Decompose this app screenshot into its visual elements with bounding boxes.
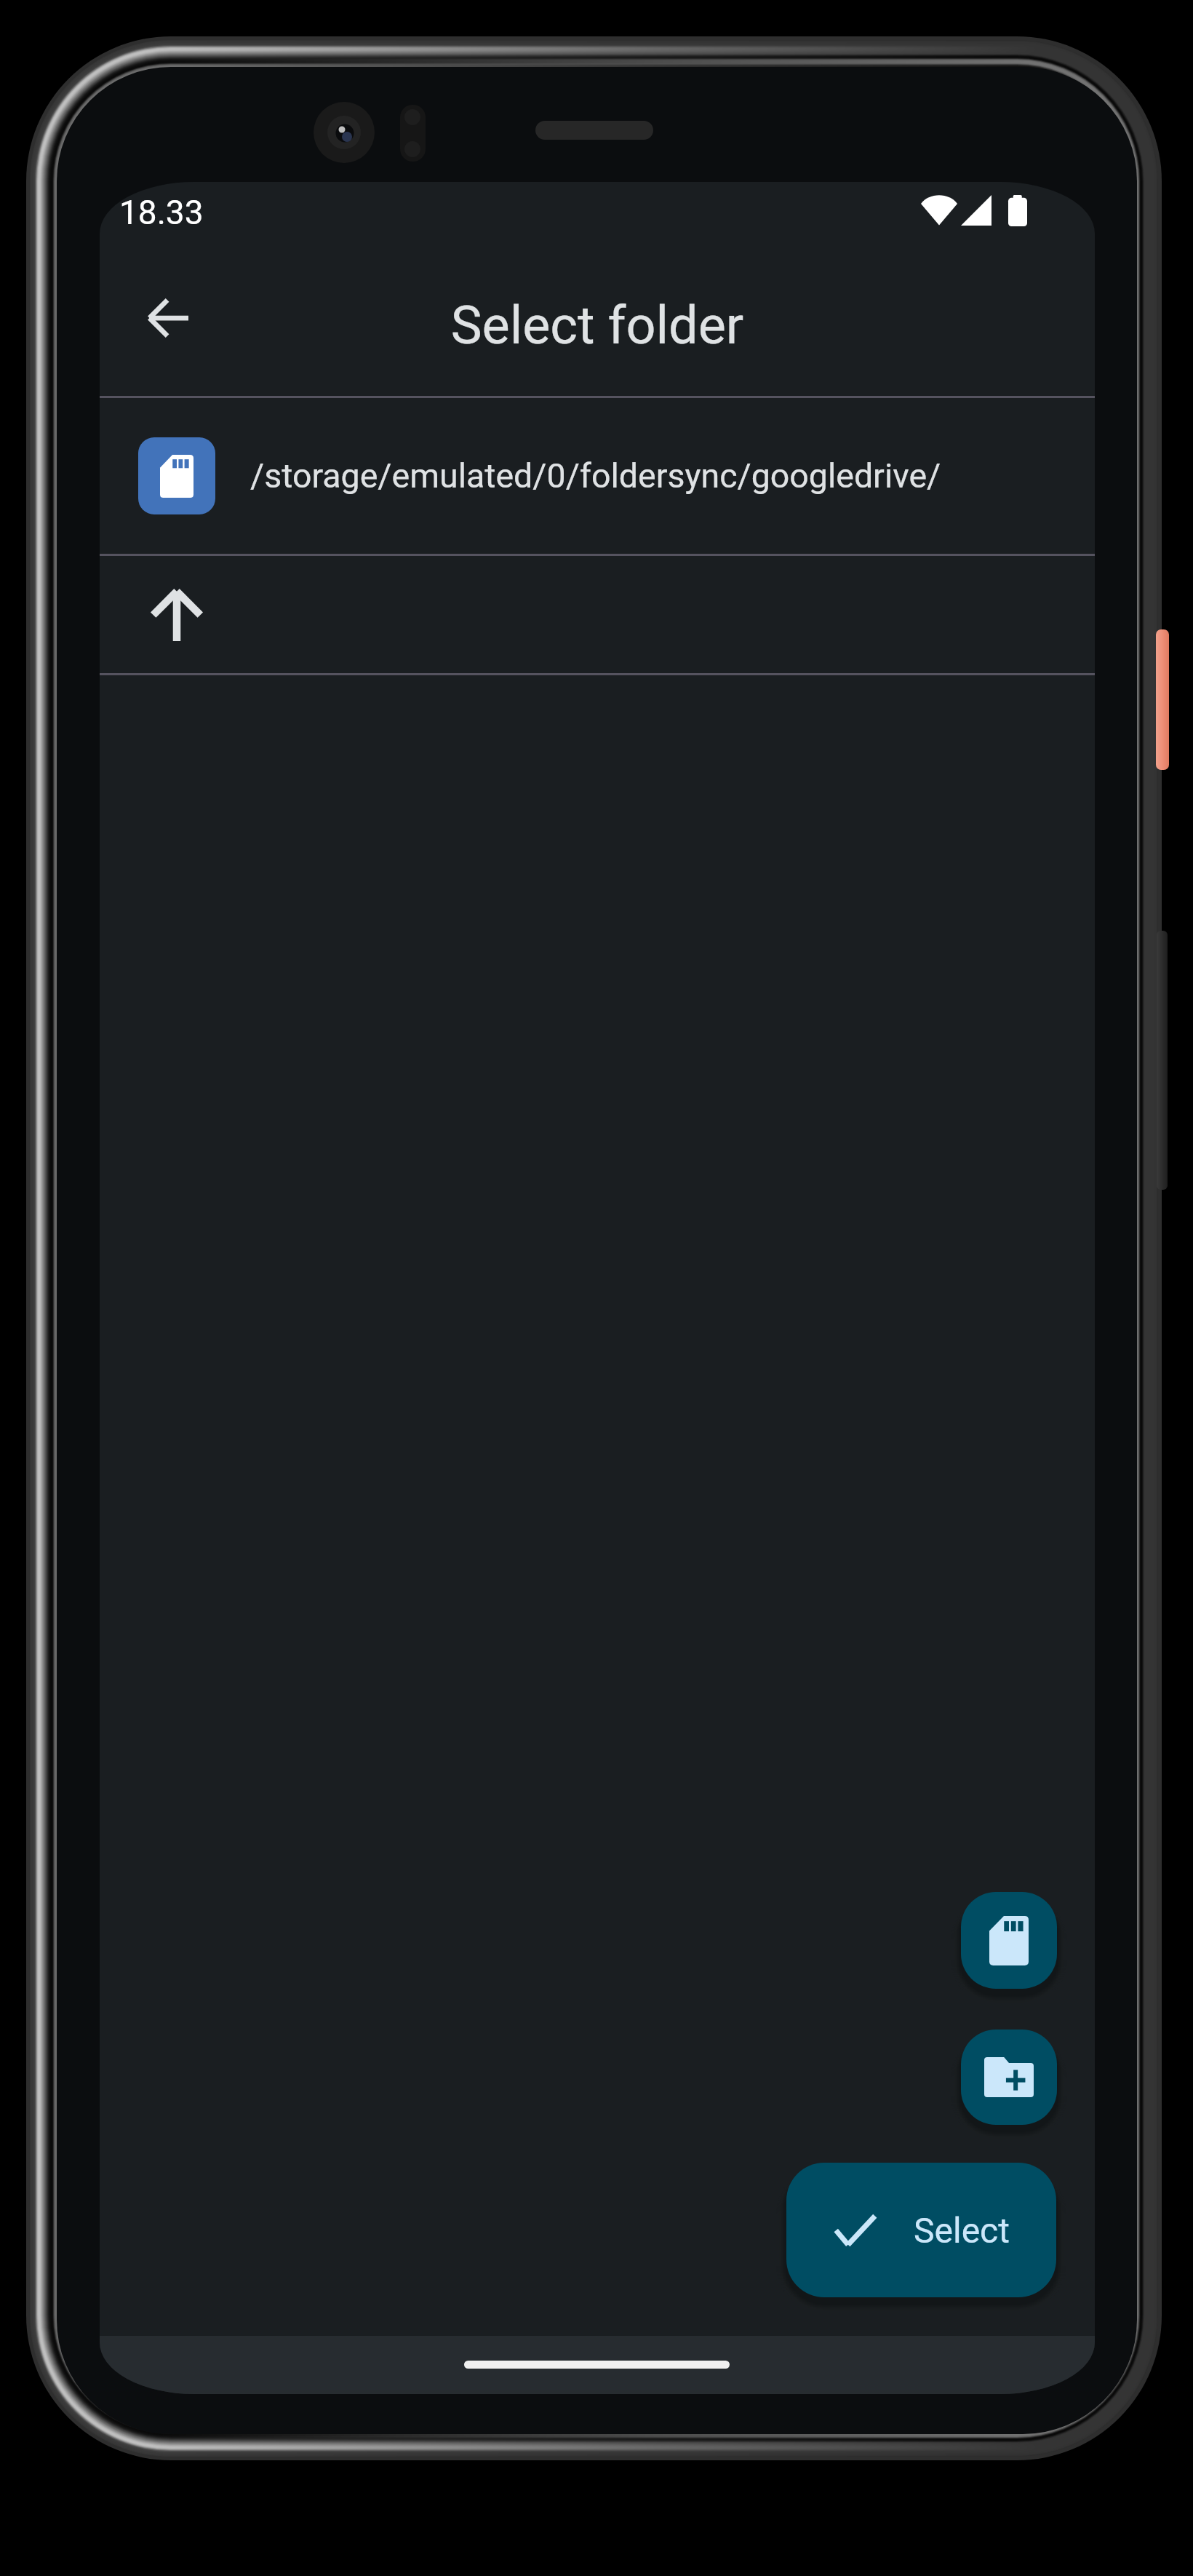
button[interactable]: Storage — [961, 1892, 1057, 1989]
button[interactable]: Select — [786, 2163, 1056, 2297]
button[interactable]: /storage/emulated/0/foldersync/googledri… — [100, 398, 1095, 554]
staticText: /storage/emulated/0/foldersync/googledri… — [250, 456, 941, 496]
button[interactable]: Create folder — [961, 2030, 1057, 2125]
staticText: 18.33 — [119, 193, 204, 232]
button[interactable]: Up one level — [100, 556, 1095, 673]
staticText: Select folder — [100, 295, 1095, 356]
staticText: Select — [914, 2210, 1010, 2251]
button[interactable]: Back — [118, 268, 218, 368]
